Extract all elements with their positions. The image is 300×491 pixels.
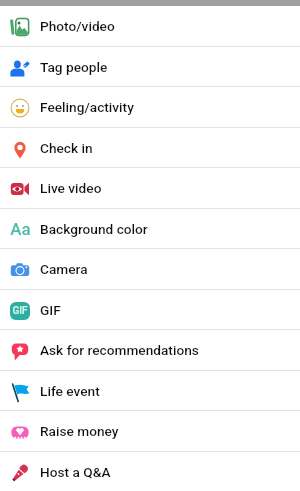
- staticText: Raise money: [40, 423, 119, 439]
- button[interactable]: Camera: [0, 249, 300, 290]
- staticText: Aa: [10, 219, 31, 239]
- staticText: Camera: [40, 261, 88, 277]
- staticText: GIF: [12, 305, 28, 317]
- button[interactable]: Tag people: [0, 47, 300, 88]
- staticText: Photo/video: [40, 18, 115, 34]
- staticText: Background color: [40, 221, 148, 237]
- button[interactable]: Photo/video: [0, 6, 300, 47]
- button[interactable]: Life event: [0, 371, 300, 412]
- staticText: GIF: [40, 302, 61, 318]
- staticText: Tag people: [40, 59, 108, 75]
- staticText: Live video: [40, 180, 102, 196]
- staticText: Life event: [40, 383, 100, 399]
- staticText: Host a Q&A: [40, 464, 111, 480]
- button[interactable]: Host a Q&A: [0, 452, 300, 491]
- button[interactable]: GIF: [0, 290, 300, 331]
- button[interactable]: Check in: [0, 128, 300, 169]
- button[interactable]: Live video: [0, 168, 300, 209]
- button[interactable]: Raise money: [0, 411, 300, 452]
- staticText: Feeling/activity: [40, 99, 134, 115]
- staticText: Ask for recommendations: [40, 342, 199, 358]
- button[interactable]: Feeling/activity: [0, 87, 300, 128]
- button[interactable]: Aa: [0, 209, 300, 250]
- staticText: Check in: [40, 140, 93, 156]
- button[interactable]: Ask for recommendations: [0, 330, 300, 371]
